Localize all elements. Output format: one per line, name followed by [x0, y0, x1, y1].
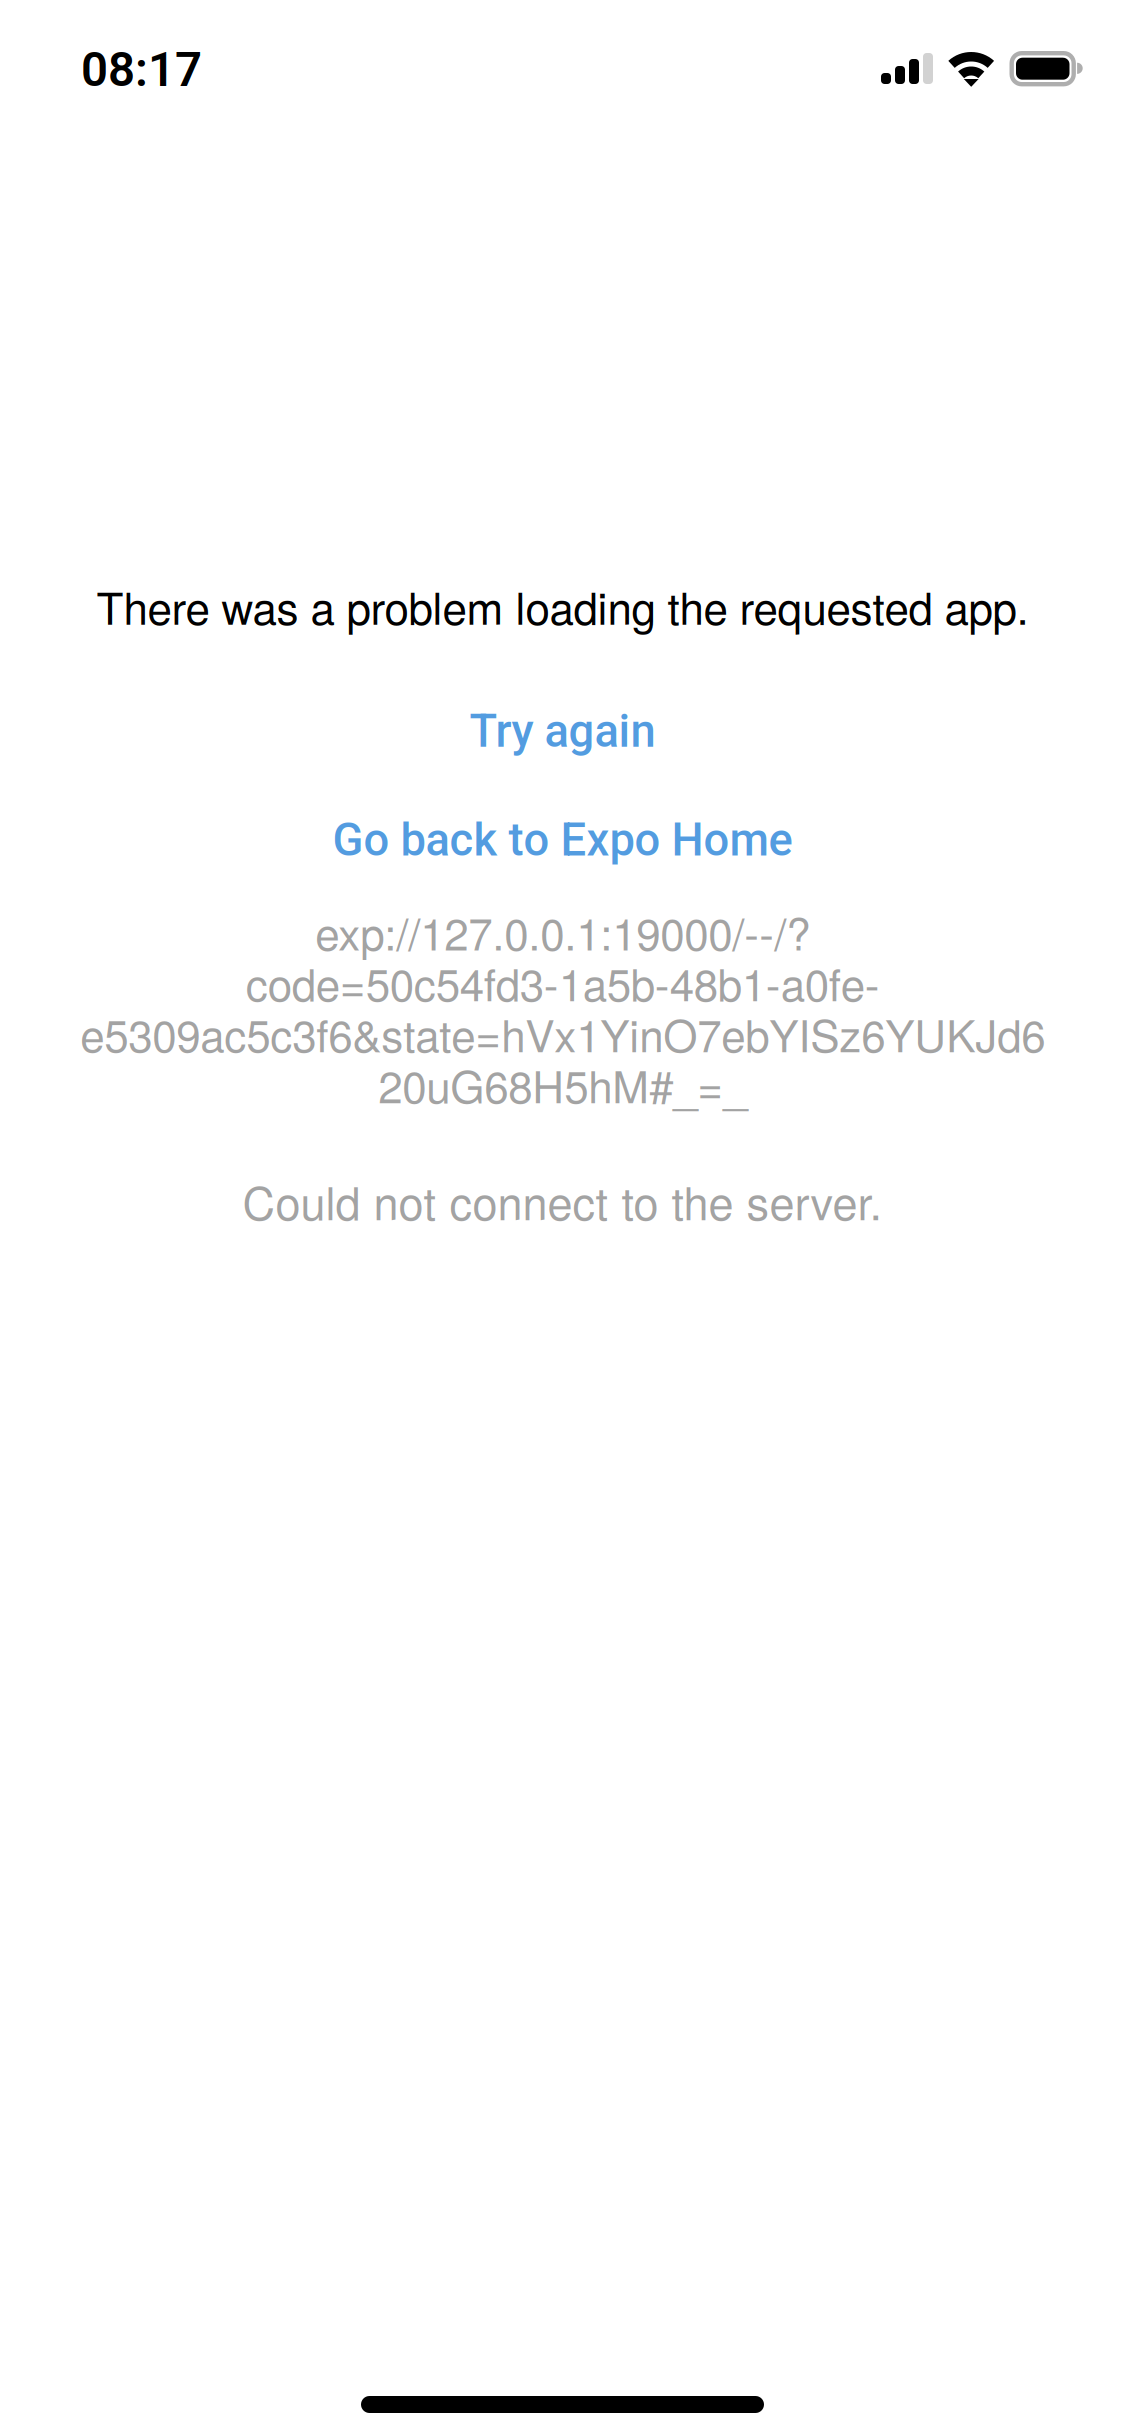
staticText: Try again [469, 711, 655, 751]
staticText: Could not connect to the server. [242, 1177, 882, 1225]
staticText: Go back to Expo Home [332, 820, 792, 860]
button[interactable]: Go back to Expo Home [0, 790, 1125, 890]
staticText: There was a problem loading the requeste… [96, 582, 1028, 629]
button[interactable]: Try again [0, 681, 1125, 781]
staticText: exp://127.0.0.1:19000/--/?code=50c54fd3-… [80, 906, 1045, 1109]
staticText: 08:17 [81, 42, 202, 97]
